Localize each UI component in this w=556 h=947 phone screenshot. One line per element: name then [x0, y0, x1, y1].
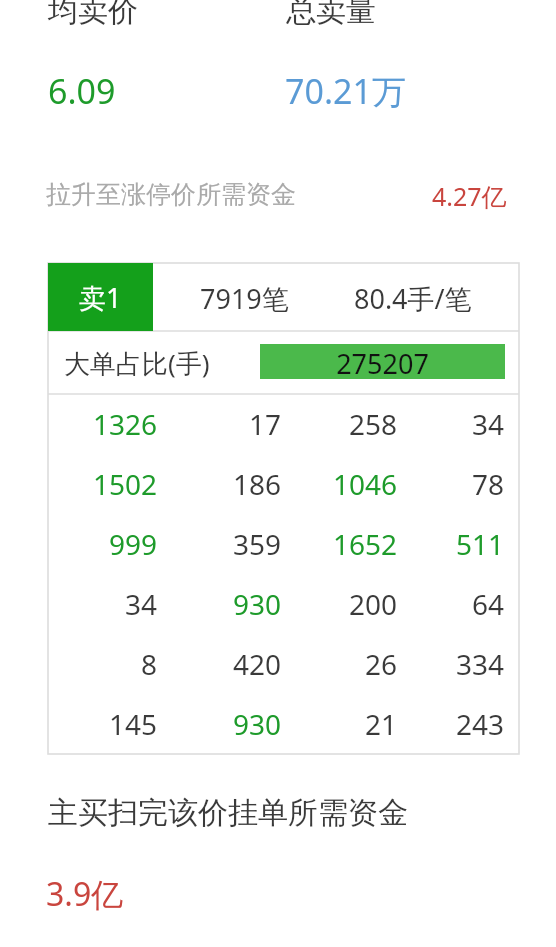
staticText: 999	[109, 525, 158, 563]
staticText: 拉升至涨停价所需资金	[46, 179, 296, 210]
staticText: 34	[472, 405, 505, 443]
staticText: 21	[365, 705, 398, 743]
staticText: 主买扫完该价挂单所需资金	[48, 794, 408, 832]
staticText: 275207	[260, 345, 505, 380]
staticText: 均卖价	[48, 0, 138, 30]
staticText: 70.21万	[285, 68, 406, 114]
staticText: 359	[233, 525, 282, 563]
staticText: 1652	[333, 525, 398, 563]
staticText: 78	[472, 465, 505, 503]
staticText: 80.4手/笔	[354, 280, 472, 317]
staticText: 1502	[93, 465, 158, 503]
staticText: 420	[233, 645, 282, 683]
staticText: 8	[141, 645, 158, 683]
staticText: 511	[456, 525, 505, 563]
staticText: 卖1	[79, 279, 122, 316]
staticText: 186	[233, 465, 282, 503]
staticText: 17	[249, 405, 282, 443]
staticText: 34	[125, 585, 158, 623]
staticText: 1326	[93, 405, 158, 443]
staticText: 总卖量	[286, 0, 376, 30]
staticText: 3.9亿	[46, 872, 124, 916]
staticText: 258	[349, 405, 398, 443]
staticText: 64	[472, 585, 505, 623]
staticText: 930	[233, 705, 282, 743]
staticText: 930	[233, 585, 282, 623]
staticText: 145	[109, 705, 158, 743]
staticText: 7919笔	[200, 280, 289, 317]
staticText: 243	[456, 705, 505, 743]
staticText: 6.09	[48, 68, 116, 114]
staticText: 大单占比(手)	[64, 345, 210, 381]
staticText: 334	[456, 645, 505, 683]
staticText: 1046	[333, 465, 398, 503]
staticText: 4.27亿	[432, 179, 507, 213]
staticText: 26	[365, 645, 398, 683]
staticText: 200	[349, 585, 398, 623]
button[interactable]: 卖1	[48, 263, 153, 331]
